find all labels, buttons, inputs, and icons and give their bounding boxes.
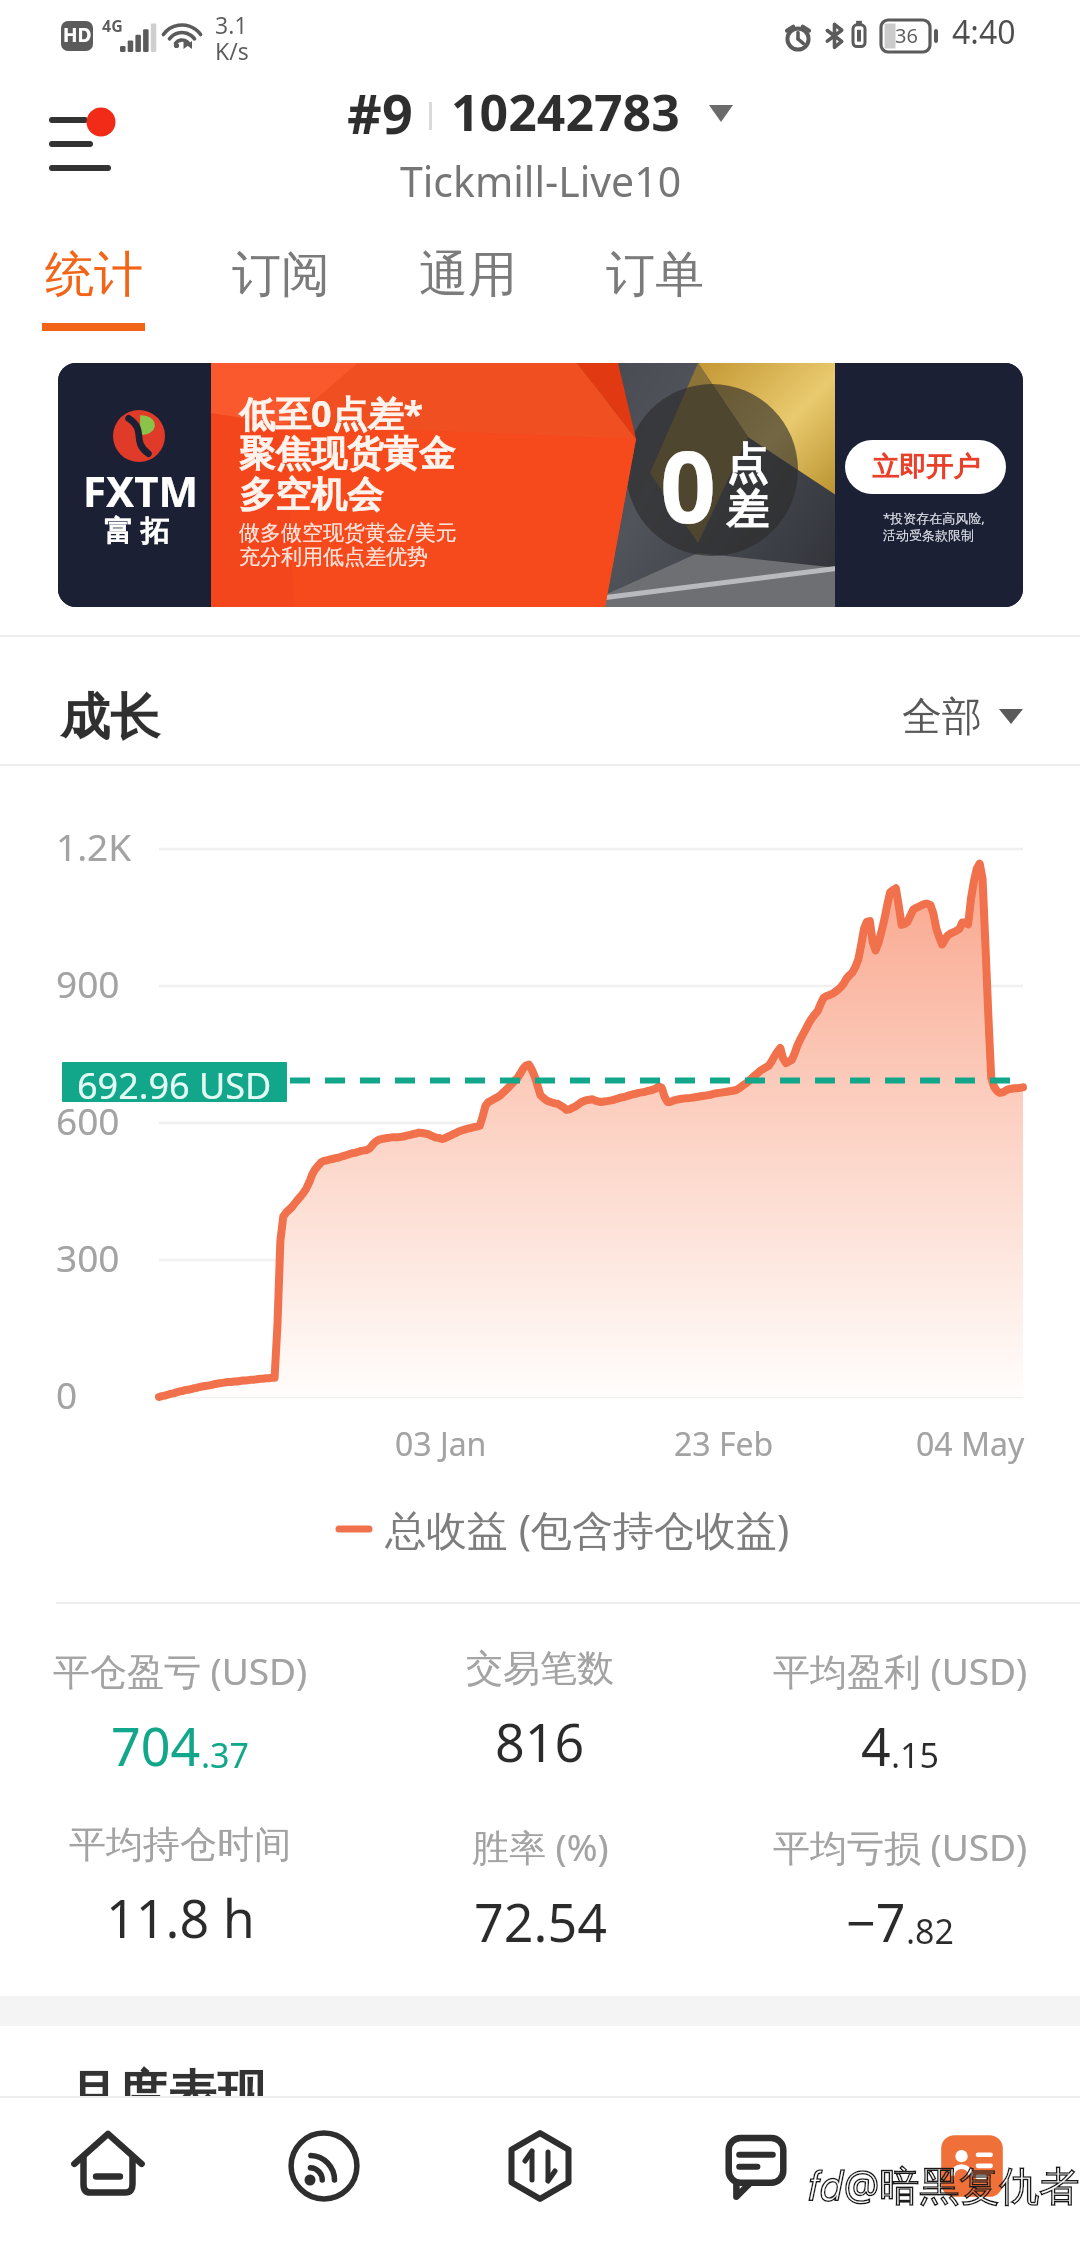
button[interactable]: 统计 [0, 240, 187, 332]
staticText: 差 [726, 484, 768, 537]
staticText: 692.96 USD [77, 1062, 272, 1101]
staticText: 活动受条款限制 [883, 527, 974, 543]
staticText: 300 [56, 1232, 120, 1282]
staticText: 04 May [916, 1422, 1025, 1466]
staticText: 4:40 [952, 10, 1016, 54]
button[interactable]: 通用 [374, 240, 561, 332]
staticText: 成长 [60, 686, 160, 749]
staticText: 704 [111, 1710, 201, 1781]
staticText: 订阅 [232, 244, 330, 306]
staticText: 充分利用低点差优势 [239, 544, 428, 570]
staticText: 多空机会 [239, 472, 383, 517]
staticText: 做多做空现货黄金/美元 [239, 518, 457, 547]
staticText: .15 [891, 1732, 940, 1778]
staticText: #9 [347, 76, 413, 150]
staticText: 月度表现 [67, 2063, 267, 2126]
staticText: 富 拓 [104, 510, 170, 550]
staticText: 4 [861, 1710, 891, 1781]
button[interactable]: FXTM advertisement [58, 363, 1023, 607]
staticText: 平均亏损 (USD) [773, 1821, 1028, 1872]
staticText: 36 [895, 22, 918, 49]
staticText: 03 Jan [395, 1422, 487, 1466]
button[interactable]: Chat [648, 2098, 864, 2244]
staticText: HD [63, 22, 92, 48]
staticText: .82 [906, 1908, 955, 1954]
button[interactable]: Signals [216, 2098, 432, 2244]
staticText: 交易笔数 [466, 1645, 614, 1692]
staticText: K/s [215, 35, 249, 66]
button[interactable]: 订单 [561, 240, 748, 332]
staticText: Tickmill-Live10 [400, 153, 682, 209]
staticText: 72.54 [474, 1886, 607, 1957]
staticText: 900 [56, 958, 120, 1008]
staticText: 全部 [902, 691, 982, 741]
staticText: 总收益 (包含持仓收益) [385, 1501, 790, 1557]
staticText: 聚焦现货黄金 [239, 431, 455, 476]
staticText: 订单 [606, 244, 704, 306]
staticText: 0 [660, 418, 717, 551]
staticText: 4G [102, 15, 123, 37]
staticText: 10242783 [451, 78, 680, 146]
staticText: .37 [201, 1732, 250, 1778]
staticText: FXTM [83, 462, 199, 519]
staticText: 600 [56, 1095, 120, 1145]
staticText: 平均盈利 (USD) [773, 1645, 1028, 1696]
button[interactable]: 订阅 [187, 240, 374, 332]
staticText: 11.8 h [106, 1882, 255, 1953]
staticText: 统计 [45, 244, 143, 306]
staticText: 𝑓𝑑@暗黑复仇者 [808, 2157, 1080, 2212]
staticText: 立即开户 [872, 450, 980, 484]
button[interactable]: 全部 [902, 691, 1023, 741]
staticText: 低至0点差* [239, 389, 424, 438]
button[interactable]: Home [0, 2098, 216, 2244]
staticText: 点 [726, 438, 768, 491]
staticText: 0 [56, 1369, 78, 1419]
button[interactable]: Trade [432, 2098, 648, 2244]
staticText: 胜率 (%) [472, 1821, 609, 1872]
staticText: 23 Feb [674, 1422, 774, 1466]
staticText: *投资存在高风险, [883, 509, 985, 527]
staticText: 平仓盈亏 (USD) [53, 1645, 308, 1696]
staticText: 1.2K [56, 821, 132, 871]
button[interactable]: Profile [864, 2098, 1080, 2244]
staticText: 通用 [419, 244, 517, 306]
button[interactable]: 立即开户 [845, 440, 1006, 494]
staticText: 平均持仓时间 [69, 1821, 291, 1868]
staticText: 3.1 [215, 9, 248, 40]
staticText: −7 [846, 1886, 906, 1957]
button[interactable]: Menu [27, 98, 131, 190]
staticText: 816 [495, 1706, 585, 1777]
